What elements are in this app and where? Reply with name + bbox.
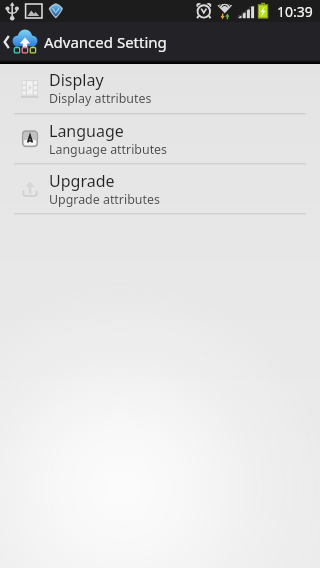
staticText: Upgrade attributes [49,191,160,208]
staticText: Language [49,120,124,142]
button[interactable]: Display [0,64,320,113]
staticText: Language attributes [49,141,168,158]
staticText: Display [49,69,104,91]
staticText: Upgrade [49,170,115,192]
button[interactable]: Language [0,115,320,163]
staticText: Advanced Setting [44,32,167,52]
staticText: Display attributes [49,90,152,107]
staticText: 10:39 [277,2,313,21]
button[interactable]: Upgrade [0,165,320,213]
button[interactable]: Navigate up [0,22,41,60]
